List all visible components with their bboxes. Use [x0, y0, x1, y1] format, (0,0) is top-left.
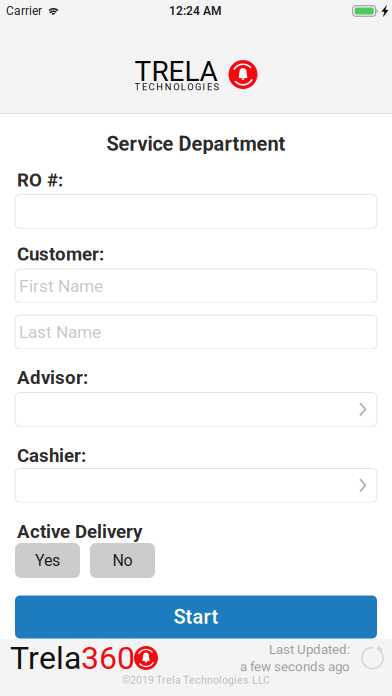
- staticText: Trela: [10, 640, 81, 676]
- staticText: Active Delivery: [17, 521, 142, 542]
- button[interactable]: [15, 468, 377, 502]
- button[interactable]: Yes: [15, 543, 80, 578]
- staticText: First Name: [19, 276, 103, 296]
- staticText: Start: [173, 606, 218, 628]
- staticText: RO #:: [17, 169, 63, 191]
- button[interactable]: Start: [15, 595, 377, 638]
- staticText: TECHNOLOGIES: [134, 82, 219, 92]
- staticText: a few seconds ago: [240, 659, 350, 674]
- staticText: Advisor:: [17, 367, 88, 388]
- staticText: TRELA: [134, 55, 217, 87]
- staticText: Carrier: [6, 4, 42, 18]
- button[interactable]: [15, 392, 377, 426]
- staticText: ©2019 Trela Technologies LLC: [122, 674, 270, 686]
- staticText: Cashier:: [17, 445, 86, 466]
- staticText: 12:24 AM: [169, 4, 222, 18]
- staticText: Service Department: [106, 133, 285, 155]
- staticText: 360: [81, 640, 135, 676]
- staticText: Last Name: [19, 322, 101, 342]
- staticText: Customer:: [17, 243, 104, 265]
- staticText: Yes: [35, 551, 60, 570]
- staticText: No: [112, 551, 132, 570]
- staticText: Last Updated:: [269, 642, 350, 657]
- button[interactable]: No: [90, 543, 155, 578]
